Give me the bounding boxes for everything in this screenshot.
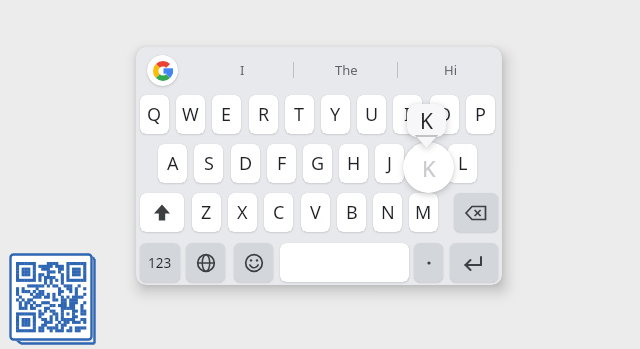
staticText: The xyxy=(335,61,358,79)
staticText: J xyxy=(387,151,392,176)
button[interactable]: Hi xyxy=(398,53,502,87)
staticText: Z xyxy=(201,200,212,225)
button[interactable] xyxy=(147,55,178,86)
button[interactable] xyxy=(414,243,443,282)
staticText: I xyxy=(404,102,411,127)
button[interactable]: V xyxy=(301,193,330,232)
button[interactable] xyxy=(450,243,498,282)
button[interactable]: C xyxy=(264,193,293,232)
staticText: I xyxy=(240,61,245,79)
staticText: P xyxy=(475,102,486,127)
staticText: Y xyxy=(330,102,341,127)
staticText: K xyxy=(420,107,433,136)
button[interactable]: O xyxy=(430,95,459,134)
staticText: B xyxy=(346,200,358,225)
staticText: L xyxy=(458,151,468,176)
button[interactable]: P xyxy=(466,95,495,134)
staticText: D xyxy=(239,151,253,176)
button[interactable]: F xyxy=(267,144,296,183)
staticText: C xyxy=(273,200,285,225)
button[interactable] xyxy=(140,193,184,232)
staticText: G xyxy=(311,151,325,176)
staticText: U xyxy=(365,102,379,127)
button[interactable]: E xyxy=(212,95,241,134)
staticText: K xyxy=(421,151,433,176)
staticText: Q xyxy=(147,102,162,127)
button[interactable]: S xyxy=(194,144,223,183)
button[interactable]: A xyxy=(158,144,187,183)
button[interactable]: T xyxy=(285,95,314,134)
button[interactable]: J xyxy=(375,144,404,183)
staticText: O xyxy=(437,102,452,127)
button[interactable]: G xyxy=(303,144,332,183)
staticText: M xyxy=(415,200,432,225)
button[interactable]: W xyxy=(176,95,205,134)
staticText: Hi xyxy=(444,61,457,79)
button[interactable]: D xyxy=(231,144,260,183)
staticText: A xyxy=(167,151,179,176)
button[interactable]: Q xyxy=(140,95,169,134)
staticText: K xyxy=(422,153,436,183)
staticText: X xyxy=(237,200,248,225)
staticText: W xyxy=(182,102,199,127)
button[interactable] xyxy=(234,243,273,282)
button[interactable]: X xyxy=(228,193,257,232)
staticText: E xyxy=(221,102,232,127)
button[interactable]: B xyxy=(337,193,366,232)
button[interactable] xyxy=(8,252,96,345)
staticText: R xyxy=(258,102,270,127)
staticText: H xyxy=(347,151,361,176)
staticText: S xyxy=(204,151,214,176)
staticText: 123 xyxy=(148,254,172,272)
staticText: F xyxy=(277,151,287,176)
button[interactable]: The xyxy=(294,53,398,87)
staticText: N xyxy=(381,200,395,225)
button[interactable]: H xyxy=(339,144,368,183)
button[interactable]: L xyxy=(448,144,477,183)
button[interactable]: M xyxy=(409,193,438,232)
staticText: V xyxy=(310,200,321,225)
button[interactable]: 123 xyxy=(140,243,180,282)
button[interactable]: K xyxy=(412,144,441,183)
button[interactable]: N xyxy=(373,193,402,232)
button[interactable] xyxy=(186,243,225,282)
button[interactable]: I xyxy=(393,95,422,134)
button[interactable]: U xyxy=(357,95,386,134)
button[interactable]: I xyxy=(190,53,294,87)
button[interactable] xyxy=(454,193,498,232)
staticText: T xyxy=(294,102,305,127)
button[interactable]: R xyxy=(249,95,278,134)
button[interactable]: Y xyxy=(321,95,350,134)
button[interactable]: Z xyxy=(192,193,221,232)
